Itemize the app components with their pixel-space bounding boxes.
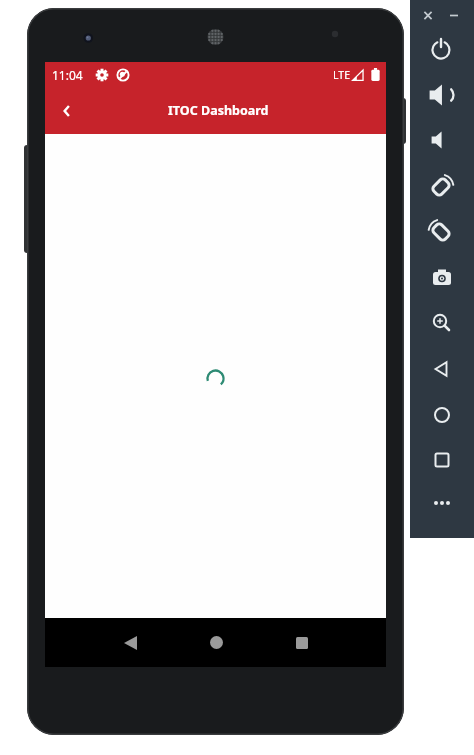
button[interactable] bbox=[173, 618, 259, 667]
button[interactable] bbox=[410, 343, 474, 388]
button[interactable] bbox=[410, 298, 474, 343]
button[interactable] bbox=[410, 478, 474, 523]
button[interactable] bbox=[259, 618, 345, 667]
staticText: ITOC Dashboard bbox=[168, 102, 269, 119]
button[interactable] bbox=[410, 163, 474, 208]
button[interactable] bbox=[410, 28, 474, 73]
button[interactable] bbox=[87, 618, 173, 667]
button[interactable] bbox=[410, 208, 474, 253]
button[interactable] bbox=[410, 118, 474, 163]
button[interactable] bbox=[53, 97, 81, 125]
button[interactable] bbox=[410, 433, 474, 478]
button[interactable] bbox=[410, 73, 474, 118]
button[interactable] bbox=[410, 253, 474, 298]
button[interactable] bbox=[410, 388, 474, 433]
staticText: LTE bbox=[333, 68, 350, 82]
staticText: 11:04 bbox=[52, 67, 83, 83]
